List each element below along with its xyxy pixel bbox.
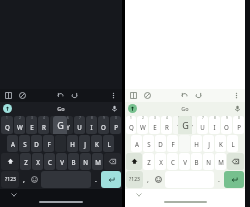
button[interactable]: Voice input <box>110 104 119 113</box>
staticText: H <box>70 140 75 148</box>
button[interactable]: A <box>131 135 142 152</box>
button[interactable]: M <box>215 153 226 170</box>
button[interactable]: Go <box>57 105 65 112</box>
button[interactable]: J <box>203 135 214 152</box>
button[interactable]: Voice input <box>233 104 242 113</box>
button[interactable]: 8 <box>86 116 97 134</box>
button[interactable]: 8 <box>209 116 220 134</box>
button[interactable]: Assistant <box>128 104 137 113</box>
staticText: N <box>83 158 88 166</box>
staticText: J <box>84 140 86 148</box>
button[interactable]: Z <box>20 153 31 170</box>
button[interactable]: X <box>32 153 43 170</box>
button[interactable]: Period <box>92 171 100 188</box>
button[interactable]: 3 <box>26 116 37 134</box>
staticText: ?123 <box>5 176 16 183</box>
button[interactable]: K <box>215 135 226 152</box>
button[interactable]: Redo <box>70 91 79 100</box>
button[interactable]: Format <box>129 91 138 100</box>
button[interactable]: F <box>43 135 54 152</box>
button[interactable]: 4 <box>161 116 172 134</box>
button[interactable]: 7 <box>74 116 85 134</box>
button[interactable]: Shift <box>1 153 19 170</box>
staticText: F <box>171 140 175 148</box>
button[interactable]: Attach <box>143 91 152 100</box>
staticText: J <box>208 140 210 148</box>
button[interactable]: More options <box>232 91 241 100</box>
button[interactable]: 5 <box>50 116 61 134</box>
button[interactable]: Undo <box>56 91 65 100</box>
button[interactable]: Enter <box>224 171 244 188</box>
button[interactable]: Attach <box>18 91 27 100</box>
button[interactable]: B <box>68 153 79 170</box>
button[interactable]: Emoji <box>29 171 40 188</box>
staticText: Q <box>129 123 134 131</box>
staticText: G <box>182 119 189 131</box>
button[interactable]: Period <box>215 171 223 188</box>
button[interactable]: 5 <box>173 116 184 134</box>
staticText: B <box>194 158 199 166</box>
button[interactable]: More options <box>109 91 118 100</box>
button[interactable]: V <box>179 153 190 170</box>
button[interactable]: D <box>155 135 166 152</box>
button[interactable]: Hide keyboard <box>135 191 143 199</box>
button[interactable]: 3 <box>149 116 160 134</box>
staticText: V <box>183 158 187 166</box>
button[interactable]: S <box>19 135 30 152</box>
button[interactable]: Backspace <box>227 153 244 170</box>
button[interactable]: J <box>79 135 90 152</box>
button[interactable]: 2 <box>14 116 25 134</box>
button[interactable]: N <box>80 153 91 170</box>
button[interactable]: ?123 <box>1 171 19 188</box>
button[interactable]: K <box>91 135 102 152</box>
button[interactable]: 9 <box>98 116 109 134</box>
button[interactable]: 0 <box>110 116 121 134</box>
button[interactable]: V <box>56 153 67 170</box>
button[interactable]: Shift <box>126 153 142 170</box>
button[interactable]: 6 <box>62 116 73 134</box>
button[interactable]: 7 <box>197 116 208 134</box>
button[interactable]: Comma <box>144 171 152 188</box>
button[interactable]: Z <box>143 153 154 170</box>
button[interactable]: A <box>7 135 18 152</box>
button[interactable]: Go <box>181 105 189 112</box>
button[interactable]: M <box>92 153 103 170</box>
staticText: 1 <box>6 116 8 120</box>
button[interactable]: Comma <box>20 171 28 188</box>
button[interactable]: 9 <box>221 116 232 134</box>
button[interactable]: B <box>191 153 202 170</box>
button[interactable]: Redo <box>194 91 203 100</box>
button[interactable]: Hide keyboard <box>10 191 18 199</box>
button[interactable]: 2 <box>137 116 148 134</box>
button[interactable]: N <box>203 153 214 170</box>
staticText: Y <box>66 123 70 131</box>
button[interactable]: Format <box>4 91 13 100</box>
button[interactable]: S <box>143 135 154 152</box>
staticText: 7 <box>79 116 81 120</box>
button[interactable]: H <box>191 135 202 152</box>
button[interactable]: H <box>67 135 78 152</box>
button[interactable]: Emoji <box>153 171 164 188</box>
button[interactable]: C <box>167 153 178 170</box>
button[interactable]: 0 <box>233 116 244 134</box>
button[interactable]: F <box>167 135 178 152</box>
button[interactable]: ?123 <box>126 171 143 188</box>
button[interactable]: L <box>103 135 114 152</box>
button[interactable]: D <box>31 135 42 152</box>
button[interactable]: 4 <box>38 116 49 134</box>
button[interactable]: X <box>155 153 166 170</box>
button[interactable]: 1 <box>1 116 13 134</box>
button[interactable]: Assistant <box>3 104 12 113</box>
button[interactable]: Undo <box>180 91 189 100</box>
button[interactable]: Backspace <box>104 153 121 170</box>
button[interactable]: C <box>44 153 55 170</box>
button[interactable]: L <box>227 135 238 152</box>
button[interactable]: 6 <box>185 116 196 134</box>
staticText: , <box>23 175 25 185</box>
button[interactable]: Enter <box>101 171 121 188</box>
button[interactable]: 1 <box>126 116 136 134</box>
